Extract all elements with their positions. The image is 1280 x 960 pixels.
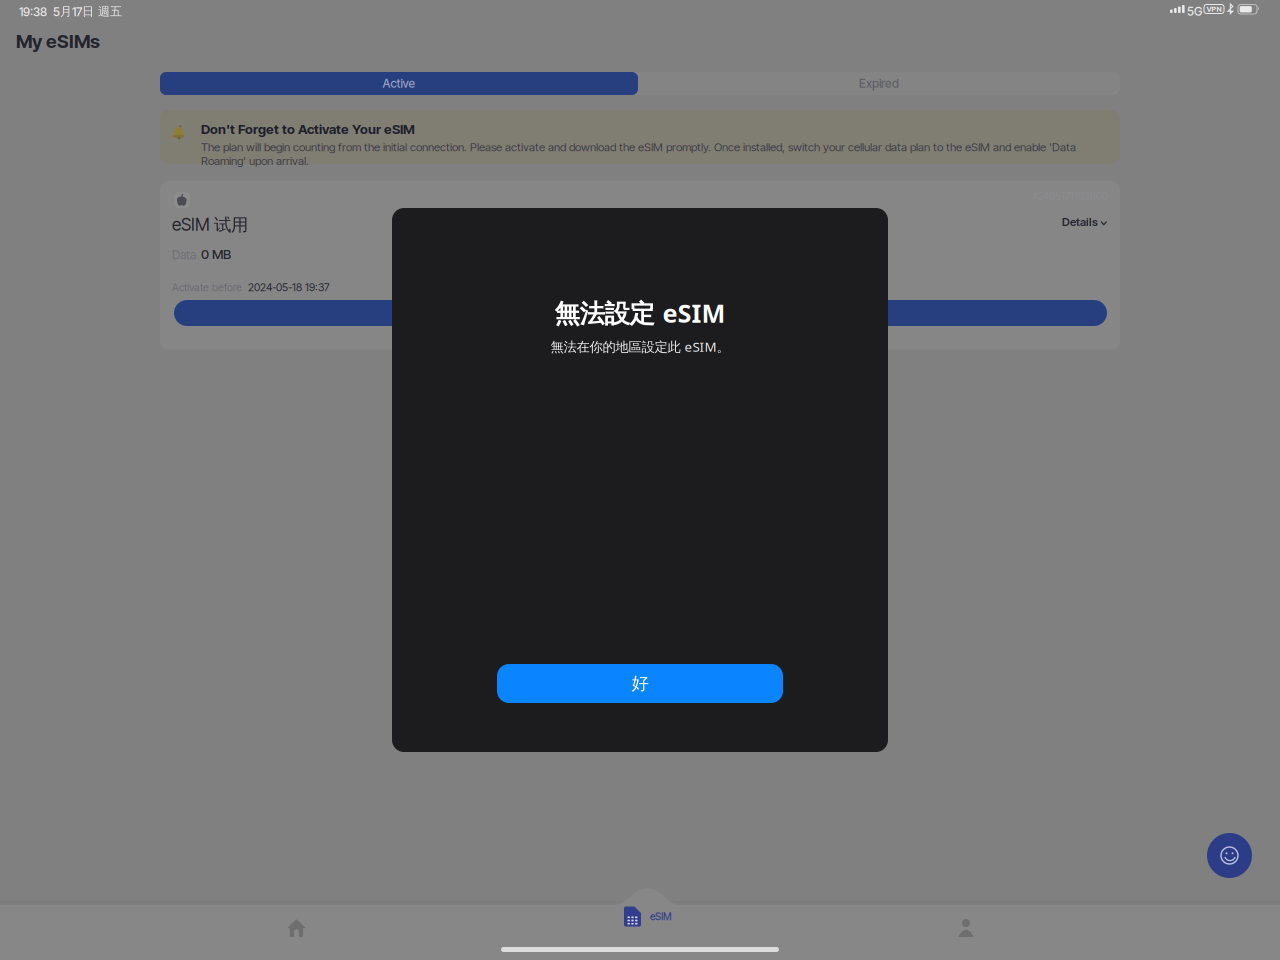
staticText: The plan will begin counting from the in… bbox=[201, 140, 1076, 168]
staticText: VPN bbox=[1206, 5, 1221, 13]
button[interactable]: 好 bbox=[497, 664, 783, 703]
staticText: Active bbox=[382, 76, 415, 91]
staticText: Data bbox=[172, 248, 196, 262]
staticText: Activate before bbox=[172, 281, 242, 294]
button[interactable]: eSIM bbox=[624, 906, 673, 927]
staticText: eSIM bbox=[650, 910, 672, 923]
button[interactable]: Active bbox=[160, 72, 638, 95]
staticText: 好 bbox=[631, 673, 648, 694]
staticText: Expired bbox=[859, 76, 899, 91]
button[interactable]: Account bbox=[957, 919, 975, 937]
staticText: 無法在你的地區設定此 eSIM。 bbox=[550, 338, 729, 355]
staticText: eSIM 试用 bbox=[172, 214, 248, 236]
staticText: Details bbox=[1062, 215, 1098, 229]
staticText: 0 MB bbox=[201, 246, 231, 262]
button[interactable]: Home bbox=[287, 919, 306, 937]
button[interactable]: Install eSIM bbox=[174, 300, 1107, 326]
staticText: 2024-05-18 19:37 bbox=[248, 281, 330, 294]
staticText: Don't Forget to Activate Your eSIM bbox=[201, 121, 415, 137]
button[interactable]: Expired bbox=[638, 72, 1120, 95]
staticText: 19:38 5月17日 週五 bbox=[19, 4, 122, 19]
staticText: 無法設定 eSIM bbox=[554, 296, 725, 330]
staticText: 5G bbox=[1187, 4, 1202, 18]
staticText: My eSIMs bbox=[16, 30, 100, 53]
button[interactable]: Details bbox=[1050, 215, 1107, 229]
button[interactable]: Support chat bbox=[1207, 833, 1252, 878]
